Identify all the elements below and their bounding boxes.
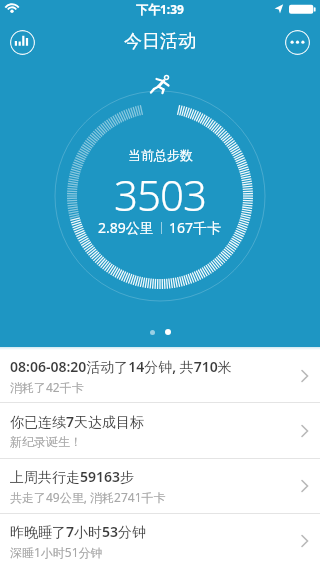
staticText: 2.89公里: [98, 218, 154, 237]
button[interactable]: [285, 30, 310, 55]
staticText: 昨晚睡了7小时53分钟: [10, 522, 147, 541]
staticText: 上周共行走59163步: [10, 467, 135, 486]
button[interactable]: 昨晚睡了7小时53分钟: [0, 514, 320, 568]
staticText: 08:06-08:20活动了14分钟, 共710米: [10, 357, 232, 376]
staticText: 今日活动: [124, 30, 196, 53]
staticText: 3503: [114, 166, 206, 223]
button[interactable]: [10, 30, 35, 55]
button[interactable]: 你已连续7天达成目标: [0, 403, 320, 459]
staticText: 167千卡: [169, 218, 222, 237]
button[interactable]: 上周共行走59163步: [0, 459, 320, 514]
staticText: 下午1:39: [136, 1, 184, 17]
button[interactable]: 08:06-08:20活动了14分钟, 共710米: [0, 350, 320, 403]
staticText: 消耗了42千卡: [10, 379, 84, 395]
staticText: 深睡1小时51分钟: [10, 544, 103, 560]
staticText: 共走了49公里, 消耗2741千卡: [10, 489, 166, 505]
staticText: 当前总步数: [128, 147, 193, 163]
staticText: 新纪录诞生！: [10, 434, 82, 449]
staticText: 你已连续7天达成目标: [10, 412, 145, 431]
